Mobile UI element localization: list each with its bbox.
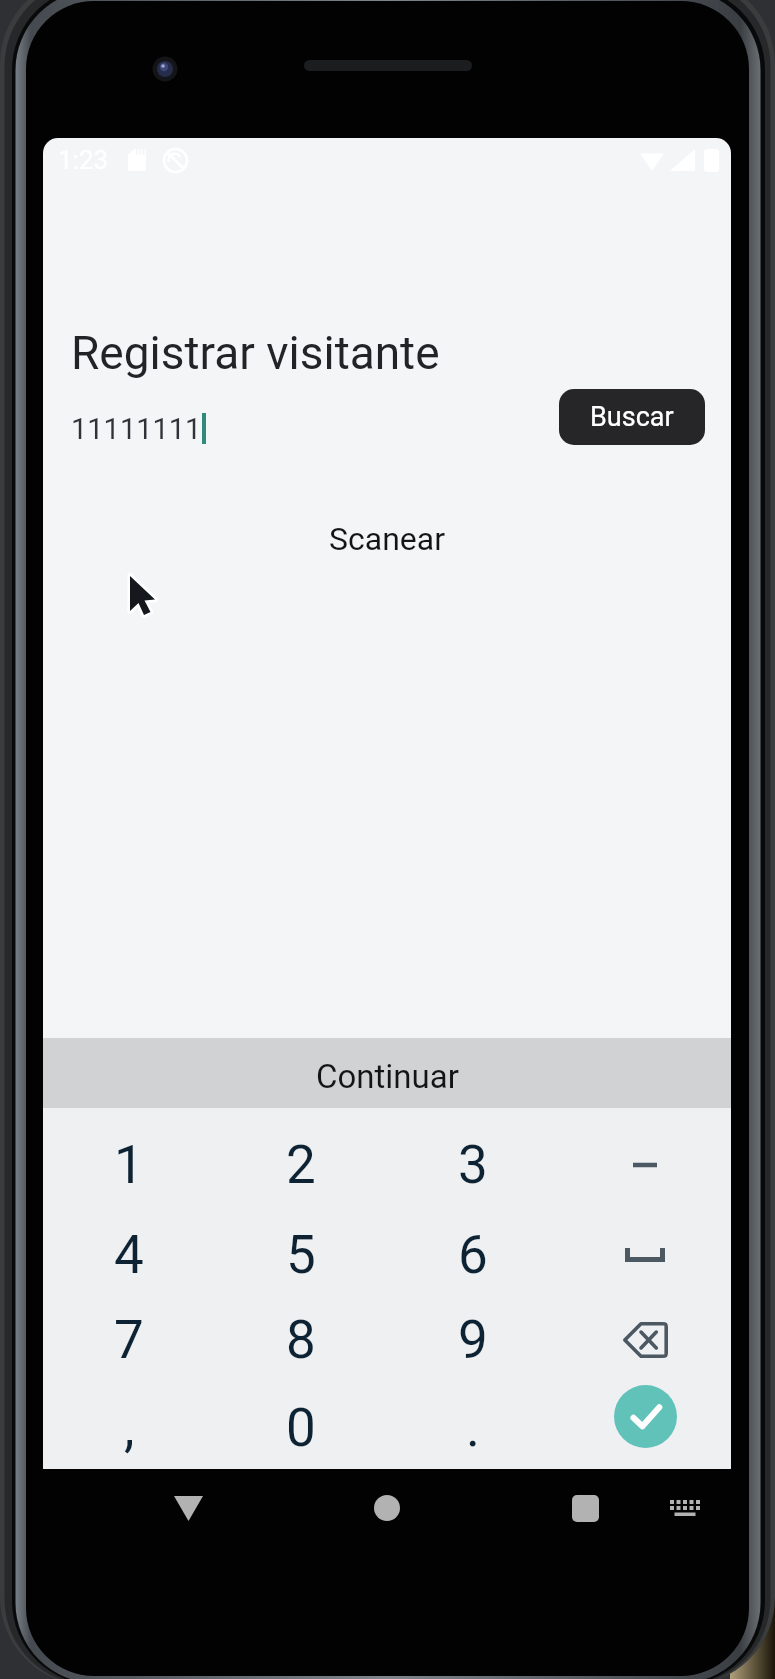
staticText: 1 (114, 1134, 144, 1196)
button[interactable]: Accept (559, 1383, 731, 1469)
button[interactable]: Buscar (559, 389, 705, 445)
button[interactable]: 8 (215, 1295, 387, 1385)
staticText: Continuar (316, 1057, 459, 1096)
button[interactable]: Minus (559, 1120, 731, 1210)
button[interactable]: 3 (387, 1120, 559, 1210)
button[interactable]: 1 (43, 1120, 215, 1210)
staticText: 5 (286, 1224, 316, 1286)
button[interactable]: 4 (43, 1210, 215, 1300)
staticText: Scanear (329, 520, 446, 558)
staticText: 9 (458, 1309, 488, 1371)
staticText: 0 (286, 1397, 316, 1459)
button[interactable]: . (387, 1383, 559, 1469)
staticText: 8 (286, 1309, 316, 1371)
button[interactable]: Recent apps (535, 1478, 635, 1538)
staticText: . (466, 1397, 480, 1459)
button[interactable]: Home (337, 1478, 437, 1538)
button[interactable]: Scanear (43, 515, 731, 563)
button[interactable]: Space (559, 1210, 731, 1300)
staticText: , (124, 1397, 135, 1459)
button[interactable]: 6 (387, 1210, 559, 1300)
button[interactable]: Continuar (43, 1038, 731, 1108)
staticText: 7 (114, 1309, 144, 1371)
button[interactable]: Backspace (559, 1295, 731, 1385)
button[interactable]: 0 (215, 1383, 387, 1469)
staticText: 6 (458, 1224, 488, 1286)
staticText: 2 (286, 1134, 316, 1196)
button[interactable]: 5 (215, 1210, 387, 1300)
button[interactable]: , (43, 1383, 215, 1469)
staticText: 4 (114, 1224, 144, 1286)
staticText: 1:23 (58, 145, 109, 175)
button[interactable]: 7 (43, 1295, 215, 1385)
button[interactable]: 2 (215, 1120, 387, 1210)
staticText: Buscar (590, 401, 674, 433)
staticText: 3 (458, 1134, 488, 1196)
button[interactable]: 9 (387, 1295, 559, 1385)
button[interactable]: Back (138, 1478, 238, 1538)
button[interactable]: Change keyboard (650, 1478, 720, 1538)
staticText: 11111111 (71, 412, 202, 446)
staticText: Registrar visitante (71, 326, 440, 380)
